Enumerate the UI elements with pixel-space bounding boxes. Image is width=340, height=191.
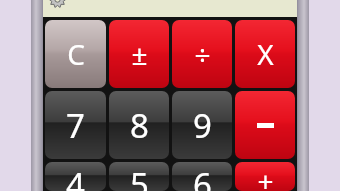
button[interactable]: 9 [172, 91, 232, 159]
staticText: X [257, 35, 274, 73]
button[interactable]: ± [109, 20, 169, 88]
button[interactable]: X [235, 20, 295, 88]
button[interactable]: 8 [109, 91, 169, 159]
staticText: + [257, 162, 274, 191]
button[interactable]: ÷ [172, 20, 232, 88]
staticText: ÷ [194, 35, 211, 73]
button[interactable]: Settings [48, 0, 67, 8]
button[interactable]: C [45, 20, 106, 88]
staticText: C [67, 35, 85, 73]
staticText: 4 [66, 162, 85, 191]
button[interactable]: + [235, 162, 295, 191]
staticText: 7 [66, 103, 85, 148]
button[interactable]: 7 [45, 91, 106, 159]
button[interactable]: 5 [109, 162, 169, 191]
staticText: ± [131, 35, 148, 73]
button[interactable]: 4 [45, 162, 106, 191]
staticText: 5 [130, 162, 149, 191]
staticText: 9 [193, 103, 212, 148]
staticText: 8 [130, 103, 149, 148]
button[interactable] [235, 91, 295, 159]
staticText: 6 [193, 162, 212, 191]
button[interactable]: 6 [172, 162, 232, 191]
